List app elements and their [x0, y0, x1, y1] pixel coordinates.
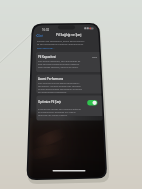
button[interactable]: Optimize Pil Şarjı açma kapama — [87, 99, 98, 106]
staticText: Azami Performans — [38, 77, 64, 81]
button[interactable]: Azami Performans — [36, 74, 102, 93]
staticText: 16:02 — [42, 28, 50, 32]
button[interactable]: Daha fazla bilgi — [52, 46, 74, 51]
staticText: sistemi beklenmedik kapanmaları önlemek — [38, 88, 83, 91]
button[interactable]: Pil Kapasitesi — [36, 52, 102, 72]
staticText: Pil Kapasitesi — [38, 55, 56, 59]
staticText: Pilin durumu normal azami performansı — [38, 82, 80, 85]
staticText: pil yaşlanmasını azaltmak için %80'in — [38, 111, 76, 114]
staticText: %93 — [92, 55, 97, 58]
staticText: Pil Sağlığı ve Şarj — [56, 33, 82, 37]
staticText: Pilinizin şarj kapasitesini, azami perfo… — [37, 40, 85, 43]
staticText: ve şarj seçeneklerini buradan yönetebili… — [37, 43, 84, 46]
staticText: için performansı yönetebilir. — [38, 91, 67, 94]
staticText: pille karşılaştırıldığında ölçülen değer… — [38, 63, 80, 66]
staticText: Geri — [38, 34, 44, 38]
staticText: Daha düşük kapasite, daha az pil ömrü. — [38, 66, 79, 69]
staticText: Optimize Pil Şarjı — [38, 100, 62, 104]
button[interactable]: Geri — [36, 33, 48, 39]
staticText: destekliyor. Yerleşik dinamik güç yöneti… — [38, 85, 81, 88]
staticText: Pilin azami kapasitesi, yeni durumdaki b… — [38, 60, 81, 63]
staticText: iPhone'unuz günlük şarj rutininizi öğren… — [38, 108, 81, 111]
staticText: üzerinde şarj olmayı bekletir. — [38, 114, 68, 117]
button[interactable]: Optimize Pil Şarjı — [36, 96, 102, 121]
staticText: Daha fazla bilgi... — [37, 47, 55, 50]
